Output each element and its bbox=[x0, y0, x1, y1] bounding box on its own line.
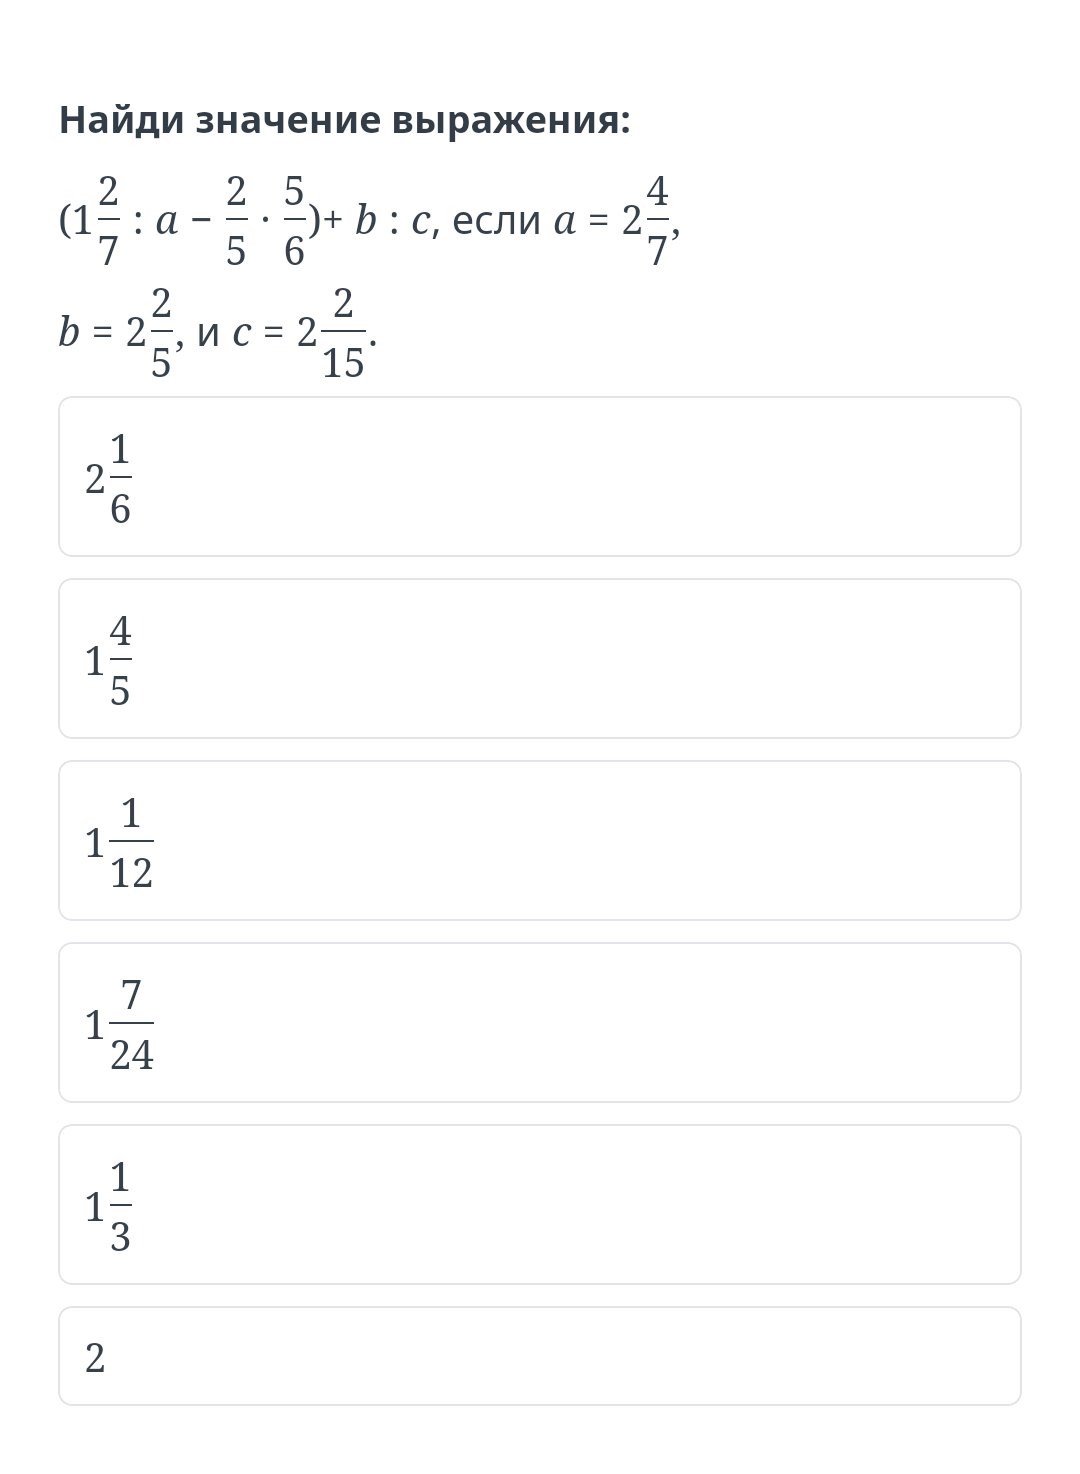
staticText: 2 bbox=[621, 191, 644, 245]
staticText: и bbox=[196, 303, 232, 357]
staticText: (1 bbox=[58, 191, 95, 245]
staticText: · bbox=[250, 191, 281, 245]
staticText: 2 bbox=[125, 303, 148, 357]
staticText: 5 bbox=[109, 662, 132, 716]
staticText: 2 bbox=[150, 274, 173, 328]
staticText: . bbox=[368, 303, 378, 357]
staticText: 6 bbox=[283, 222, 306, 274]
staticText: = bbox=[577, 191, 621, 245]
staticText: 1 bbox=[84, 814, 107, 868]
staticText: 5 bbox=[283, 162, 306, 216]
staticText: 6 bbox=[109, 480, 132, 534]
staticText: 7 bbox=[120, 966, 143, 1020]
staticText: 24 bbox=[109, 1026, 154, 1080]
staticText: 2 bbox=[84, 1329, 107, 1383]
button[interactable]: 1 bbox=[58, 942, 1022, 1103]
staticText: = bbox=[81, 303, 125, 357]
button[interactable]: 1 bbox=[58, 578, 1022, 739]
staticText: b bbox=[355, 191, 378, 245]
staticText: 3 bbox=[109, 1208, 132, 1262]
button[interactable]: 1 bbox=[58, 760, 1022, 921]
staticText: 1 bbox=[109, 1148, 132, 1202]
staticText: )+ bbox=[308, 191, 355, 245]
button[interactable]: 2 bbox=[58, 1306, 1022, 1406]
staticText: c bbox=[232, 303, 252, 357]
staticText: = bbox=[252, 303, 296, 357]
button[interactable]: 2 bbox=[58, 396, 1022, 557]
staticText: Найди значение выражения: bbox=[58, 92, 632, 144]
staticText: 1 bbox=[84, 632, 107, 686]
staticText: b bbox=[58, 303, 81, 357]
button[interactable]: 1 bbox=[58, 1124, 1022, 1285]
staticText: a bbox=[553, 191, 577, 245]
staticText: 1 bbox=[120, 784, 143, 838]
staticText: 1 bbox=[84, 996, 107, 1050]
staticText: − bbox=[179, 191, 223, 245]
staticText: , bbox=[175, 303, 196, 357]
staticText: 5 bbox=[225, 222, 248, 274]
staticText: 4 bbox=[109, 602, 132, 656]
staticText: , bbox=[671, 191, 681, 245]
staticText: 7 bbox=[97, 222, 120, 274]
staticText: 12 bbox=[109, 844, 154, 898]
staticText: 2 bbox=[97, 162, 120, 216]
staticText: 4 bbox=[646, 162, 669, 216]
staticText: 7 bbox=[646, 222, 669, 274]
staticText: : bbox=[378, 191, 411, 245]
staticText: 1 bbox=[109, 420, 132, 474]
staticText: 2 bbox=[332, 274, 355, 328]
staticText: : bbox=[122, 191, 155, 245]
staticText: 5 bbox=[150, 334, 173, 386]
staticText: 2 bbox=[225, 162, 248, 216]
staticText: c bbox=[411, 191, 431, 245]
staticText: 2 bbox=[84, 450, 107, 504]
staticText: a bbox=[155, 191, 179, 245]
staticText: , если bbox=[431, 191, 553, 245]
staticText: 15 bbox=[321, 334, 366, 386]
staticText: 2 bbox=[296, 303, 319, 357]
staticText: 1 bbox=[84, 1178, 107, 1232]
